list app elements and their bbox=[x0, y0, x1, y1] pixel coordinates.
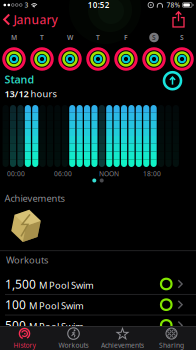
staticText: W bbox=[67, 33, 73, 42]
staticText: F bbox=[124, 33, 128, 42]
staticText: 06:00 bbox=[54, 169, 72, 178]
button[interactable]: Day rings bbox=[140, 44, 168, 74]
staticText: 100 M Pool Swim bbox=[5, 297, 84, 313]
staticText: T bbox=[40, 33, 44, 42]
staticText: 1,500 M Pool Swim bbox=[5, 276, 94, 292]
staticText: Workouts bbox=[58, 341, 88, 350]
staticText: 78% bbox=[166, 1, 180, 9]
button[interactable]: 100 M Pool Swim bbox=[0, 295, 196, 315]
button[interactable]: History bbox=[0, 328, 49, 350]
staticText: Achievements bbox=[4, 192, 64, 204]
staticText: 500 M Pool Swim bbox=[5, 317, 84, 333]
staticText: 00:00 bbox=[7, 169, 25, 178]
button[interactable]: Day rings bbox=[0, 44, 28, 74]
staticText: 13/12 hours bbox=[4, 87, 56, 100]
button[interactable]: Share bbox=[172, 11, 196, 28]
button[interactable]: Day rings bbox=[168, 44, 196, 74]
button[interactable]: Stand bbox=[164, 72, 196, 89]
button[interactable]: 500 M Pool Swim bbox=[0, 315, 196, 335]
staticText: M bbox=[11, 33, 17, 42]
staticText: History bbox=[13, 341, 35, 350]
staticText: NOON bbox=[99, 169, 119, 178]
staticText: S bbox=[152, 33, 156, 42]
staticText: 3 bbox=[25, 1, 29, 9]
button[interactable]: Day rings bbox=[84, 44, 112, 74]
staticText: Achievements bbox=[101, 341, 144, 350]
button[interactable]: 1,500 M Pool Swim bbox=[0, 274, 196, 294]
button[interactable]: Achievements bbox=[98, 328, 147, 350]
button[interactable]: Workouts bbox=[49, 328, 98, 350]
button[interactable]: January bbox=[0, 11, 57, 27]
staticText: Workouts bbox=[6, 254, 48, 266]
button[interactable]: Day rings bbox=[56, 44, 84, 74]
staticText: Sharing bbox=[159, 341, 184, 350]
button[interactable]: Day rings bbox=[112, 44, 140, 74]
staticText: T bbox=[96, 33, 100, 42]
staticText: 10:52 bbox=[88, 0, 110, 10]
button[interactable]: Achievement badge bbox=[0, 208, 42, 243]
button[interactable]: Sharing bbox=[147, 328, 196, 350]
staticText: 18:00 bbox=[143, 169, 161, 178]
staticText: S bbox=[180, 33, 184, 42]
staticText: Stand bbox=[4, 72, 34, 86]
button[interactable]: Day rings bbox=[28, 44, 56, 74]
staticText: January bbox=[13, 11, 57, 27]
